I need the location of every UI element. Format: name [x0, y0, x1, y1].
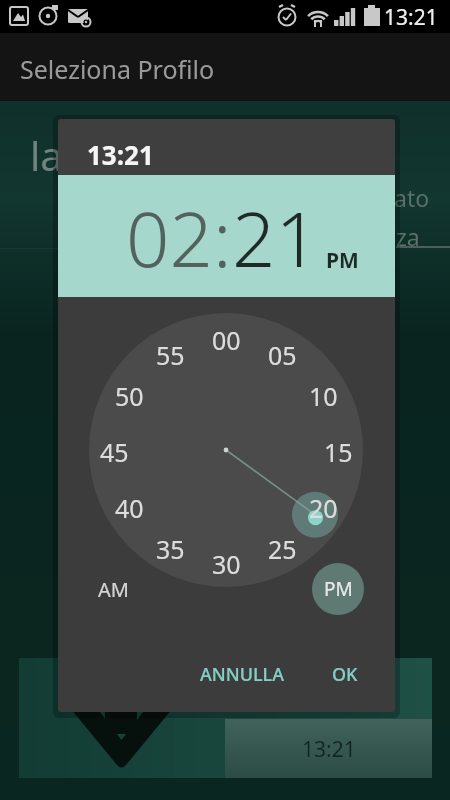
- button[interactable]: AM: [83, 571, 143, 607]
- staticText: PM: [326, 246, 359, 275]
- button[interactable]: PM: [312, 563, 364, 615]
- staticText: 13:21: [302, 735, 356, 764]
- staticText: Seleziona Profilo: [20, 52, 215, 86]
- staticText: AM: [98, 576, 129, 603]
- staticText: 50: [115, 379, 144, 409]
- staticText: 55: [156, 338, 185, 368]
- staticText: 10: [309, 379, 338, 409]
- staticText: 30: [212, 547, 241, 577]
- staticText: 21: [232, 186, 319, 290]
- staticText: 15: [324, 435, 353, 465]
- button[interactable]: OK: [316, 657, 374, 691]
- staticText: 25: [268, 532, 297, 562]
- staticText: 05: [268, 338, 297, 368]
- button[interactable]: ANNULLA: [182, 657, 302, 691]
- staticText: ato: [394, 182, 430, 210]
- staticText: 20: [309, 491, 338, 521]
- staticText: ANNULLA: [200, 662, 285, 687]
- staticText: PM: [324, 576, 353, 602]
- staticText: 45: [100, 435, 129, 465]
- staticText: 13:21: [87, 137, 154, 171]
- staticText: :: [213, 186, 232, 290]
- staticText: 00: [212, 323, 241, 353]
- button[interactable]: 13:21: [225, 719, 432, 779]
- staticText: OK: [332, 662, 358, 687]
- staticText: la: [30, 128, 63, 174]
- staticText: 13:21: [384, 3, 438, 30]
- staticText: za: [396, 221, 420, 249]
- staticText: 40: [115, 491, 144, 521]
- staticText: 02: [126, 186, 213, 290]
- staticText: 35: [156, 532, 185, 562]
